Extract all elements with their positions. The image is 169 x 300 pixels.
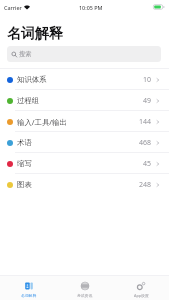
staticText: 468 [139, 138, 152, 148]
staticText: 图表 [17, 180, 32, 189]
button[interactable]: 输入/工具/输出 [0, 111, 169, 132]
button[interactable]: 术语 [0, 132, 169, 153]
staticText: 知识体系 [17, 75, 47, 84]
staticText: 名词解释 [7, 25, 63, 43]
staticText: Carrier [4, 4, 22, 11]
staticText: 10 [143, 75, 152, 85]
staticText: 45 [143, 159, 152, 169]
button[interactable]: 图表 [0, 174, 169, 195]
staticText: 144 [139, 117, 152, 127]
staticText: 名词解释 [21, 293, 37, 298]
staticText: 过程组 [17, 96, 40, 105]
button[interactable]: 搜索 [7, 46, 161, 62]
button[interactable]: 名词解释 [0, 276, 57, 300]
button[interactable]: 知识体系 [0, 69, 169, 90]
staticText: 248 [139, 180, 152, 190]
button[interactable]: 缩写 [0, 153, 169, 174]
button[interactable]: App设置 [113, 276, 169, 300]
staticText: 术语 [17, 138, 32, 147]
button[interactable]: 过程组 [0, 90, 169, 111]
staticText: 搜索 [19, 50, 32, 58]
staticText: 10:05 PM [79, 4, 103, 11]
staticText: 缩写 [17, 159, 32, 168]
staticText: 考试资讯 [77, 293, 93, 298]
button[interactable]: 考试资讯 [57, 276, 113, 300]
staticText: 49 [143, 96, 152, 106]
staticText: 输入/工具/输出 [17, 117, 67, 127]
staticText: App设置 [134, 293, 149, 298]
